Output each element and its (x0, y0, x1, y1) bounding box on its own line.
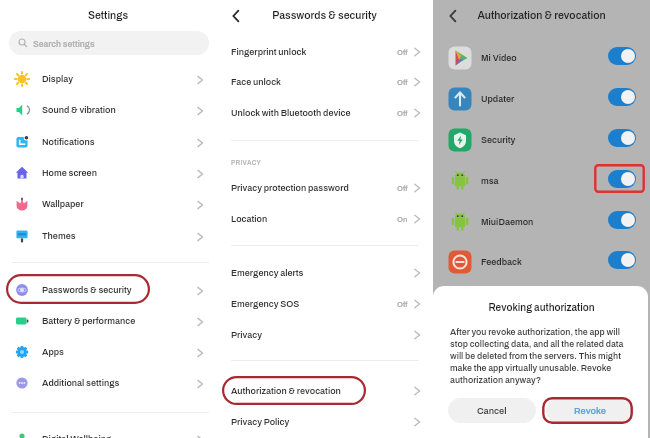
button[interactable]: Cancel (448, 398, 536, 423)
staticText: Off (397, 184, 408, 192)
staticText: On (397, 215, 408, 223)
staticText: Revoking authorization (434, 302, 648, 313)
button[interactable]: Updater (433, 83, 650, 115)
staticText: Display (42, 74, 74, 84)
staticText: Privacy Policy (231, 417, 290, 427)
staticText: Battery & performance (42, 316, 136, 326)
button[interactable]: Emergency alerts (216, 259, 433, 287)
button[interactable]: Wallpaper (0, 190, 216, 218)
button[interactable]: Themes (0, 222, 216, 250)
staticText: Search settings (33, 39, 95, 48)
button[interactable]: Unlock with Bluetooth device (216, 99, 433, 127)
staticText: Settings (0, 10, 216, 21)
staticText: Apps (42, 347, 64, 357)
staticText: Sound & vibration (42, 105, 116, 115)
button[interactable]: Privacy (216, 321, 433, 349)
button[interactable]: Back (225, 5, 247, 27)
staticText: Off (397, 109, 408, 117)
button[interactable]: Emergency SOS (216, 290, 433, 318)
button[interactable]: Location (216, 205, 433, 233)
staticText: Home screen (42, 168, 97, 178)
staticText: Mi Video (481, 53, 517, 63)
staticText: PRIVACY (231, 159, 262, 166)
staticText: msa (481, 176, 499, 186)
staticText: Emergency alerts (231, 268, 304, 278)
staticText: Emergency SOS (231, 299, 300, 309)
staticText: Privacy protection password (231, 183, 349, 193)
button[interactable]: Fingerprint unlock (216, 38, 433, 66)
staticText: Off (397, 300, 408, 308)
staticText: Updater (481, 94, 515, 104)
button[interactable]: Authorization & revocation (216, 377, 433, 405)
staticText: Privacy (231, 330, 262, 340)
button[interactable]: Passwords & security (0, 276, 216, 304)
staticText: After you revoke authorization, the app … (450, 327, 630, 385)
button[interactable]: Back (442, 5, 464, 27)
staticText: Security (481, 135, 516, 145)
staticText: Face unlock (231, 77, 281, 87)
button[interactable]: Toggle Security (608, 129, 636, 147)
button[interactable]: Toggle msa (608, 170, 636, 188)
button[interactable]: Search settings (9, 31, 209, 55)
staticText: Fingerprint unlock (231, 47, 307, 57)
staticText: Off (397, 48, 408, 56)
staticText: Wallpaper (42, 199, 84, 209)
staticText: Location (231, 214, 268, 224)
staticText: Additional settings (42, 378, 120, 388)
staticText: Unlock with Bluetooth device (231, 108, 351, 118)
button[interactable]: Privacy protection password (216, 174, 433, 202)
staticText: Passwords & security (216, 10, 433, 21)
button[interactable]: Privacy Policy (216, 408, 433, 436)
staticText: Authorization & revocation (433, 10, 650, 21)
staticText: Passwords & security (42, 285, 132, 295)
button[interactable]: Toggle Mi Video (608, 47, 636, 65)
button[interactable]: Battery & performance (0, 307, 216, 335)
button[interactable]: Mi Video (433, 42, 650, 74)
button[interactable]: Digital Wellbeing (0, 425, 216, 438)
staticText: Themes (42, 231, 76, 241)
button[interactable]: msa (433, 165, 650, 197)
button[interactable]: Display (0, 65, 216, 93)
button[interactable]: Notifications (0, 128, 216, 156)
staticText: Feedback (481, 257, 522, 267)
staticText: Notifications (42, 137, 95, 147)
button[interactable]: Face unlock (216, 68, 433, 96)
staticText: Revoke (574, 406, 606, 416)
button[interactable]: Toggle Feedback (608, 251, 636, 269)
button[interactable]: Security (433, 124, 650, 156)
button[interactable]: Apps (0, 338, 216, 366)
staticText: Off (397, 78, 408, 86)
button[interactable]: Home screen (0, 159, 216, 187)
staticText: Digital Wellbeing (42, 434, 112, 438)
button[interactable]: Additional settings (0, 369, 216, 397)
staticText: MiuiDaemon (481, 217, 534, 227)
button[interactable]: Toggle Updater (608, 88, 636, 106)
button[interactable]: MiuiDaemon (433, 206, 650, 238)
staticText: Cancel (477, 406, 507, 416)
button[interactable]: Toggle MiuiDaemon (608, 211, 636, 229)
button[interactable]: Sound & vibration (0, 96, 216, 124)
button[interactable]: Revoke (546, 398, 634, 423)
staticText: Authorization & revocation (231, 386, 341, 396)
button[interactable]: Feedback (433, 246, 650, 278)
